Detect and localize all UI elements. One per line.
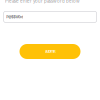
staticText: Submit bbox=[44, 49, 55, 54]
button[interactable]: Submit bbox=[19, 44, 80, 59]
staticText: Please enter your password below bbox=[5, 0, 80, 4]
button[interactable]: P@$$W0rd bbox=[4, 11, 97, 22]
staticText: P@$$W0rd bbox=[6, 15, 23, 19]
